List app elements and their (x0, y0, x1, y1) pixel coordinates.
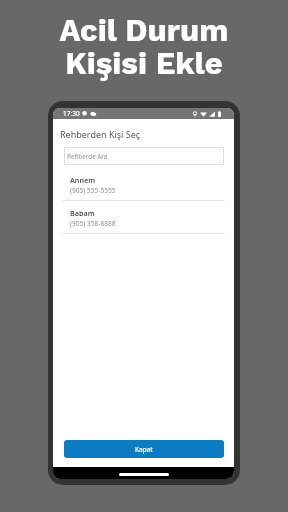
button[interactable]: Babam (53, 201, 234, 234)
staticText: Kapat (135, 445, 153, 454)
staticText: 17:30 (63, 109, 80, 118)
staticText: Annem (70, 175, 96, 185)
button[interactable]: Rehberde Ara (64, 147, 224, 165)
button[interactable]: Annem (53, 168, 234, 201)
staticText: Acil Durum Kişisi Ekle (0, 12, 288, 82)
button[interactable]: Kapat (64, 440, 224, 458)
staticText: Rehberde Ara (67, 152, 108, 161)
staticText: Babam (70, 208, 95, 218)
staticText: (905) 358-8888 (70, 219, 116, 228)
staticText: Rehberden Kişi Seç (60, 128, 141, 140)
staticText: (905) 555-5555 (70, 186, 116, 195)
